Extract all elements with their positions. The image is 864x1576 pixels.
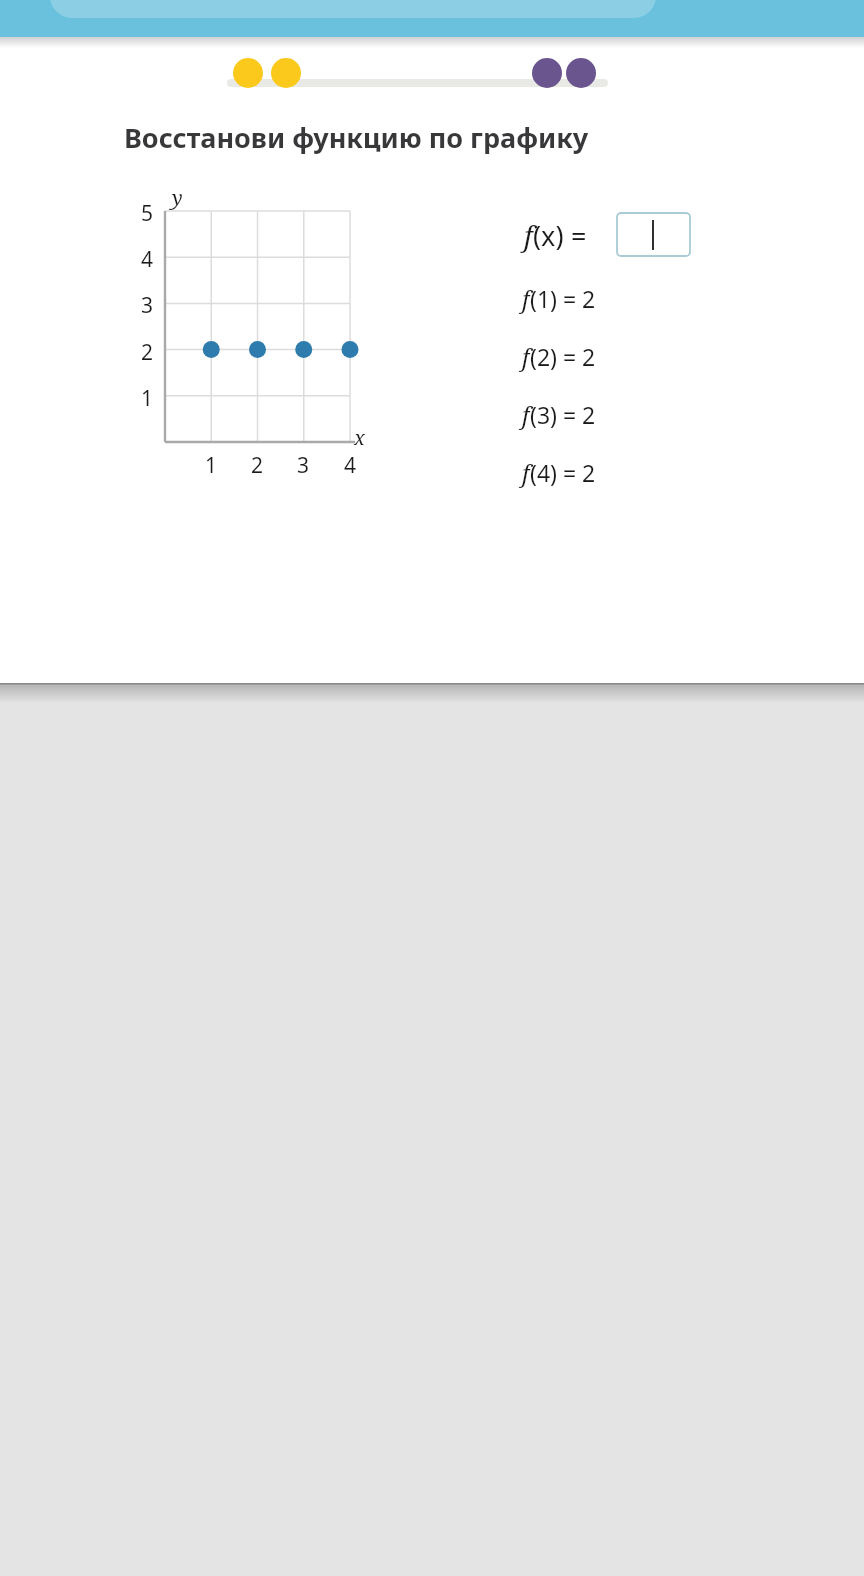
staticText: 3 xyxy=(283,451,323,480)
staticText: f xyxy=(522,341,530,372)
staticText: 1 xyxy=(191,451,231,480)
staticText: 4 xyxy=(127,245,167,274)
staticText: = 2 xyxy=(557,399,596,430)
staticText: (4) xyxy=(530,457,557,488)
staticText: f xyxy=(522,457,530,488)
staticText: 5 xyxy=(127,199,167,228)
staticText: (3) xyxy=(530,399,557,430)
staticText: 2 xyxy=(237,451,277,480)
staticText: (x) xyxy=(533,217,564,254)
staticText: = 2 xyxy=(557,341,596,372)
button[interactable]: Answer input field xyxy=(612,208,695,261)
staticText: x xyxy=(354,424,365,451)
staticText: = 2 xyxy=(557,283,596,314)
staticText: 4 xyxy=(330,451,370,480)
staticText: = xyxy=(564,217,587,254)
staticText: f xyxy=(524,217,533,254)
staticText: (1) xyxy=(530,283,557,314)
button[interactable]: Lesson progress xyxy=(227,56,608,90)
staticText: 2 xyxy=(127,338,167,367)
staticText: f xyxy=(522,399,530,430)
staticText: = 2 xyxy=(557,457,596,488)
staticText: (2) xyxy=(530,341,557,372)
staticText: Восстанови функцию по графику xyxy=(124,119,589,156)
staticText: 3 xyxy=(127,291,167,320)
staticText: y xyxy=(172,184,183,211)
staticText: 1 xyxy=(127,384,167,413)
staticText: f xyxy=(522,283,530,314)
